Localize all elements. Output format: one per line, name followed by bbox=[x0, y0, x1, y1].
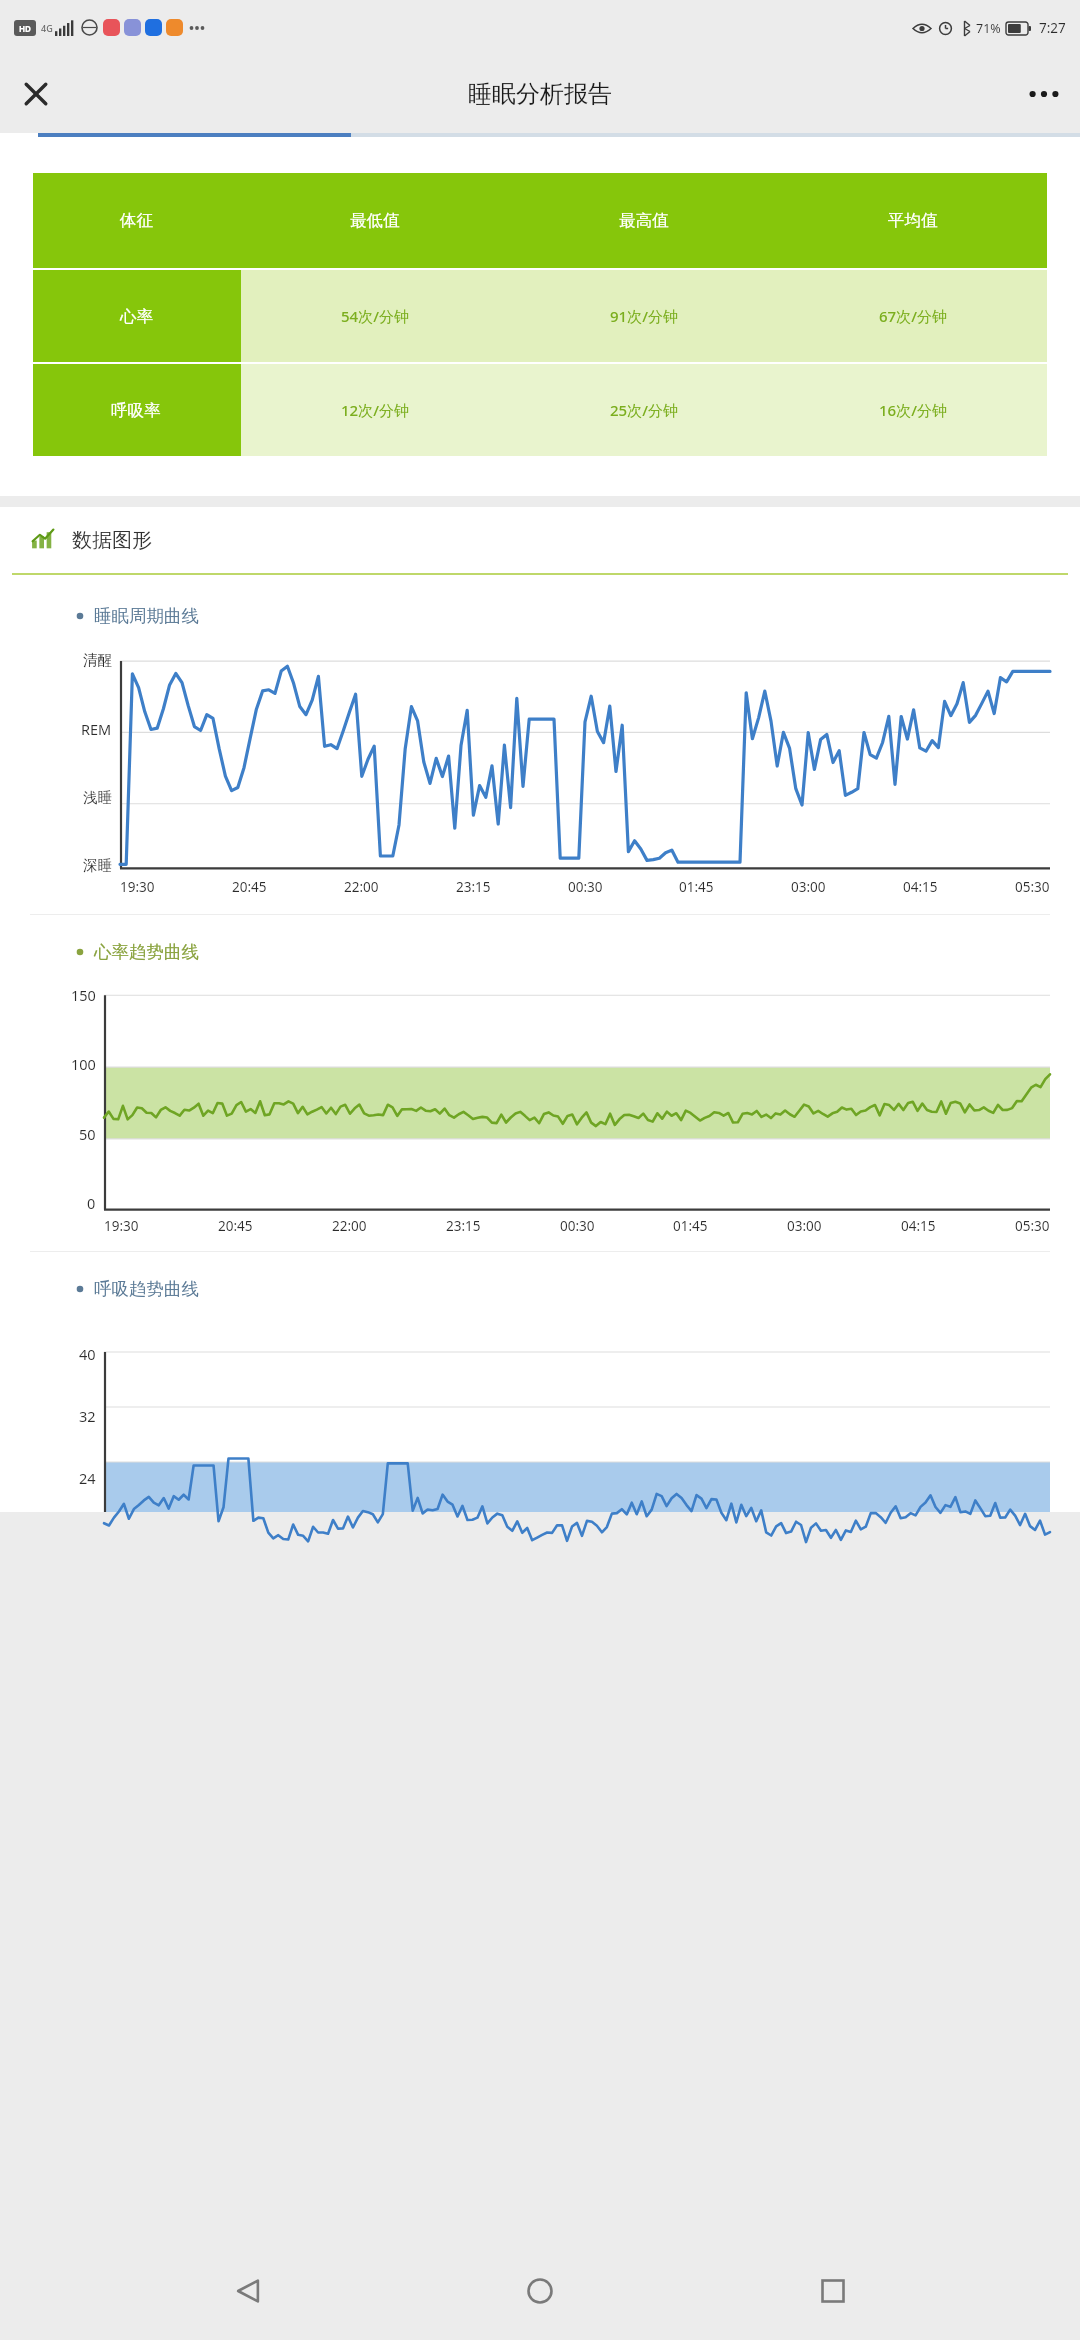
staticText: 16次/分钟 bbox=[879, 400, 947, 420]
staticText: 23:15 bbox=[456, 878, 491, 896]
staticText: 04:15 bbox=[901, 1217, 936, 1235]
button[interactable]: Back bbox=[203, 2246, 293, 2336]
staticText: 91次/分钟 bbox=[610, 306, 678, 326]
staticText: 25次/分钟 bbox=[610, 400, 678, 420]
staticText: 50 bbox=[79, 1124, 96, 1144]
button[interactable]: More options bbox=[1016, 66, 1072, 122]
staticText: HD bbox=[19, 23, 31, 34]
staticText: 100 bbox=[71, 1054, 96, 1074]
staticText: 清醒 bbox=[83, 651, 112, 669]
staticText: 数据图形 bbox=[72, 528, 152, 553]
staticText: 20:45 bbox=[232, 878, 267, 896]
button[interactable]: Recent apps bbox=[788, 2246, 878, 2336]
staticText: 心率趋势曲线 bbox=[94, 941, 199, 963]
staticText: 40 bbox=[79, 1344, 96, 1364]
staticText: 03:00 bbox=[791, 878, 826, 896]
staticText: 最低值 bbox=[350, 210, 400, 231]
staticText: 03:00 bbox=[787, 1217, 822, 1235]
staticText: REM bbox=[81, 719, 112, 739]
staticText: 呼吸趋势曲线 bbox=[94, 1278, 199, 1300]
staticText: 00:30 bbox=[568, 878, 603, 896]
staticText: 19:30 bbox=[104, 1217, 139, 1235]
staticText: 67次/分钟 bbox=[879, 306, 947, 326]
staticText: 呼吸率 bbox=[111, 400, 161, 421]
staticText: 深睡 bbox=[83, 856, 112, 874]
staticText: 32 bbox=[79, 1406, 96, 1426]
staticText: 7:27 bbox=[1039, 19, 1066, 37]
staticText: 04:15 bbox=[903, 878, 938, 896]
staticText: 22:00 bbox=[332, 1217, 367, 1235]
button[interactable]: Close bbox=[8, 66, 64, 122]
staticText: 05:30 bbox=[1015, 878, 1050, 896]
staticText: 心率 bbox=[120, 306, 153, 327]
staticText: 0 bbox=[87, 1193, 96, 1213]
staticText: 睡眠周期曲线 bbox=[94, 605, 199, 627]
staticText: 最高值 bbox=[619, 210, 669, 231]
staticText: 4G bbox=[41, 22, 53, 34]
staticText: 150 bbox=[71, 985, 96, 1005]
staticText: 71% bbox=[976, 20, 1001, 37]
button[interactable]: Home bbox=[495, 2246, 585, 2336]
staticText: 20:45 bbox=[218, 1217, 253, 1235]
staticText: 54次/分钟 bbox=[341, 306, 409, 326]
staticText: 浅睡 bbox=[83, 788, 112, 806]
staticText: 01:45 bbox=[673, 1217, 708, 1235]
staticText: 12次/分钟 bbox=[341, 400, 409, 420]
staticText: 24 bbox=[79, 1468, 96, 1488]
staticText: 平均值 bbox=[888, 210, 938, 231]
staticText: 22:00 bbox=[344, 878, 379, 896]
staticText: 睡眠分析报告 bbox=[468, 79, 612, 109]
staticText: 23:15 bbox=[446, 1217, 481, 1235]
staticText: 体征 bbox=[120, 210, 153, 231]
staticText: 01:45 bbox=[679, 878, 714, 896]
staticText: 00:30 bbox=[560, 1217, 595, 1235]
staticText: 19:30 bbox=[120, 878, 155, 896]
staticText: 05:30 bbox=[1015, 1217, 1050, 1235]
